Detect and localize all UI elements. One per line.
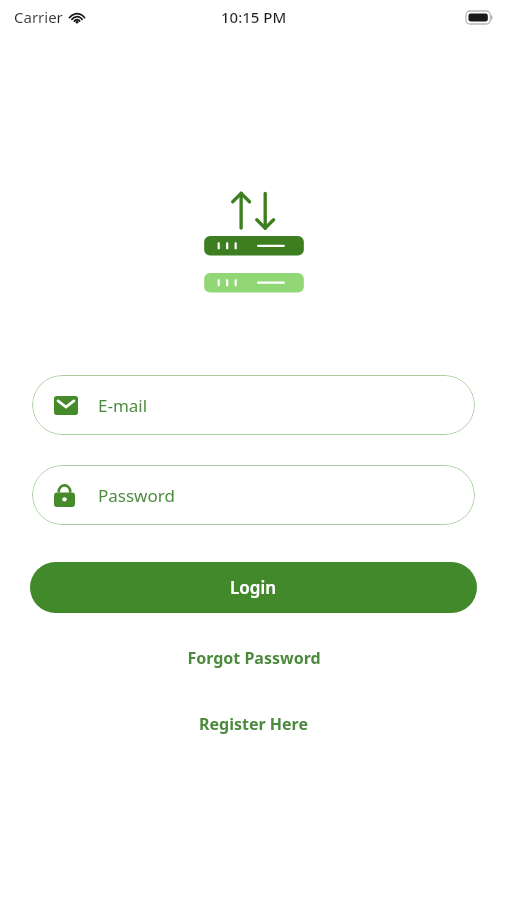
other: Data transfer logo: [198, 185, 310, 297]
button[interactable]: Register Here: [187, 709, 320, 739]
staticText: 10:15 PM: [221, 7, 287, 27]
button[interactable]: Forgot Password: [175, 643, 333, 673]
button[interactable]: Login: [30, 562, 477, 613]
staticText: Register Here: [199, 713, 308, 735]
staticText: Carrier: [14, 7, 63, 27]
staticText: Login: [230, 576, 277, 599]
button[interactable]: E-mail: [32, 375, 475, 435]
staticText: Password: [98, 484, 175, 507]
staticText: E-mail: [98, 394, 148, 417]
staticText: Forgot Password: [187, 647, 321, 669]
button[interactable]: Password: [32, 465, 475, 525]
